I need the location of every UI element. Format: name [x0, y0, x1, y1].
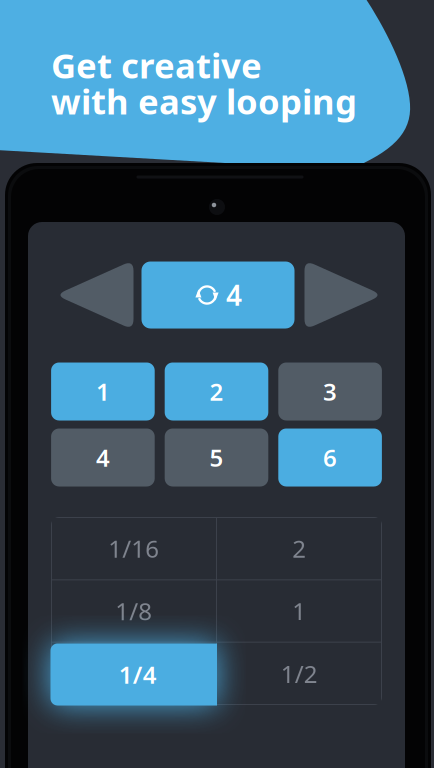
button[interactable]: 2: [165, 362, 268, 420]
button[interactable]: 2: [216, 517, 382, 580]
button[interactable]: 1/2: [216, 642, 382, 705]
staticText: Get creative: [51, 42, 262, 88]
button[interactable]: 4: [141, 261, 294, 328]
button[interactable]: 1/16: [51, 517, 216, 580]
staticText: 3: [323, 376, 337, 407]
button[interactable]: 1: [216, 580, 382, 642]
button[interactable]: 1/8: [51, 580, 216, 642]
staticText: 1/2: [281, 658, 318, 690]
button[interactable]: 4: [51, 428, 155, 486]
staticText: with easy looping: [51, 78, 357, 124]
staticText: 1: [292, 595, 306, 627]
staticText: 1/4: [119, 659, 157, 690]
staticText: 4: [226, 276, 242, 314]
button[interactable]: 1: [51, 362, 155, 420]
staticText: 2: [292, 532, 306, 564]
staticText: 1: [96, 376, 110, 407]
staticText: 1/8: [115, 595, 152, 627]
staticText: 1/16: [108, 532, 159, 564]
staticText: 5: [209, 442, 223, 473]
button[interactable]: 3: [278, 362, 382, 420]
staticText: 4: [96, 442, 110, 473]
staticText: 6: [323, 442, 337, 473]
button[interactable]: 1/4: [50, 643, 217, 705]
button[interactable]: 6: [278, 428, 382, 486]
staticText: 2: [209, 376, 223, 407]
button[interactable]: 5: [165, 428, 268, 486]
button[interactable]: [51, 642, 216, 705]
